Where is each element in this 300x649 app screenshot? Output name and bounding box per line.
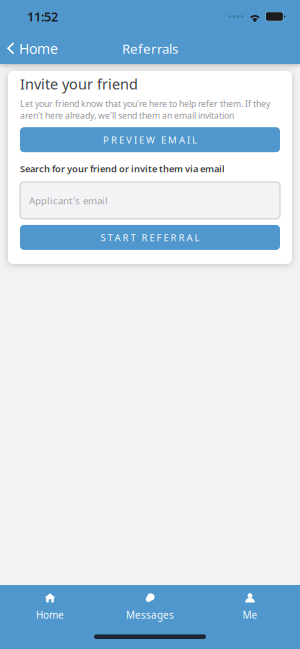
- button[interactable]: P R E V I E W E M A I L: [20, 127, 280, 152]
- staticText: P R E V I E W E M A I L: [103, 133, 197, 146]
- staticText: Let your friend know that you're here to…: [20, 98, 270, 121]
- staticText: Applicant's email: [29, 194, 108, 207]
- staticText: S T A R T R E F E R R A L: [100, 231, 199, 244]
- staticText: Home: [19, 39, 58, 58]
- staticText: Invite your friend: [20, 74, 138, 94]
- button[interactable]: Home: [0, 590, 100, 625]
- button[interactable]: Messages: [100, 590, 200, 625]
- staticText: Home: [36, 608, 64, 622]
- staticText: Search for your friend or invite them vi…: [20, 162, 225, 175]
- staticText: Me: [242, 608, 257, 622]
- staticText: 11:52: [27, 8, 58, 25]
- staticText: Referrals: [122, 39, 178, 58]
- button[interactable]: S T A R T R E F E R R A L: [20, 225, 280, 250]
- staticText: Messages: [126, 608, 174, 622]
- button[interactable]: Me: [200, 590, 300, 625]
- button[interactable]: Home: [0, 34, 66, 63]
